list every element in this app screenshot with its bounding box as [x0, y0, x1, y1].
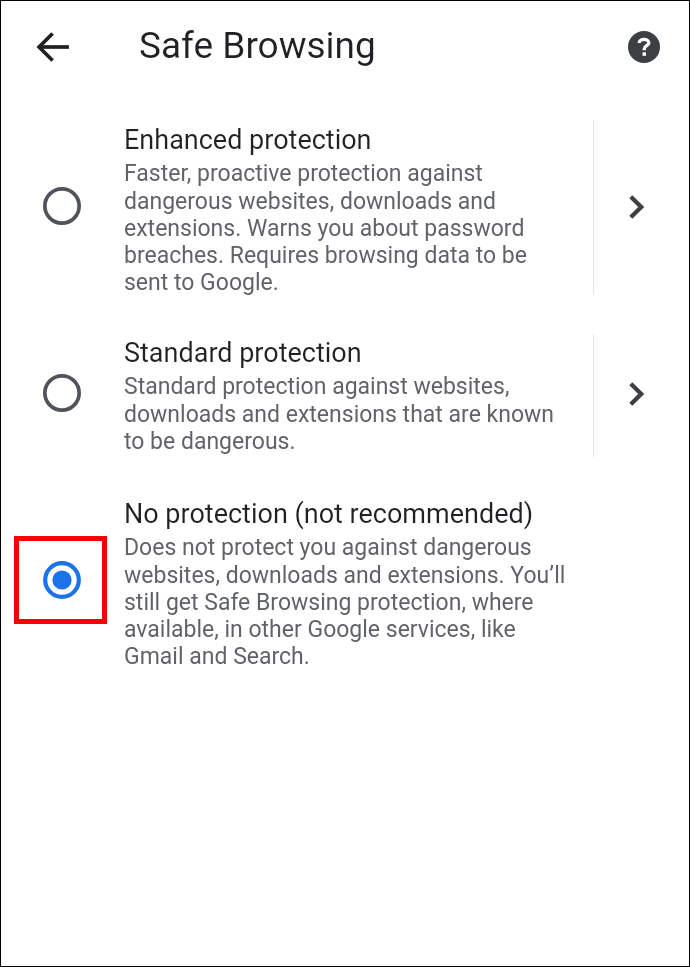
button[interactable]: Back [30, 23, 78, 71]
staticText: Does not protect you against dangerous w… [124, 534, 569, 669]
staticText: Safe Browsing [139, 24, 376, 67]
button[interactable]: No protection (not recommended) [1, 481, 689, 681]
button[interactable]: Standard protection [1, 321, 689, 471]
button[interactable]: Help [620, 23, 668, 71]
staticText: Enhanced protection [124, 124, 599, 156]
button[interactable]: More details [598, 169, 674, 245]
staticText: Faster, proactive protection against dan… [124, 160, 569, 295]
button[interactable]: Enhanced protection [1, 105, 689, 311]
staticText: No protection (not recommended) [124, 498, 599, 530]
staticText: Standard protection against websites, do… [124, 373, 569, 454]
staticText: Standard protection [124, 337, 599, 369]
button[interactable]: More details [598, 356, 674, 432]
